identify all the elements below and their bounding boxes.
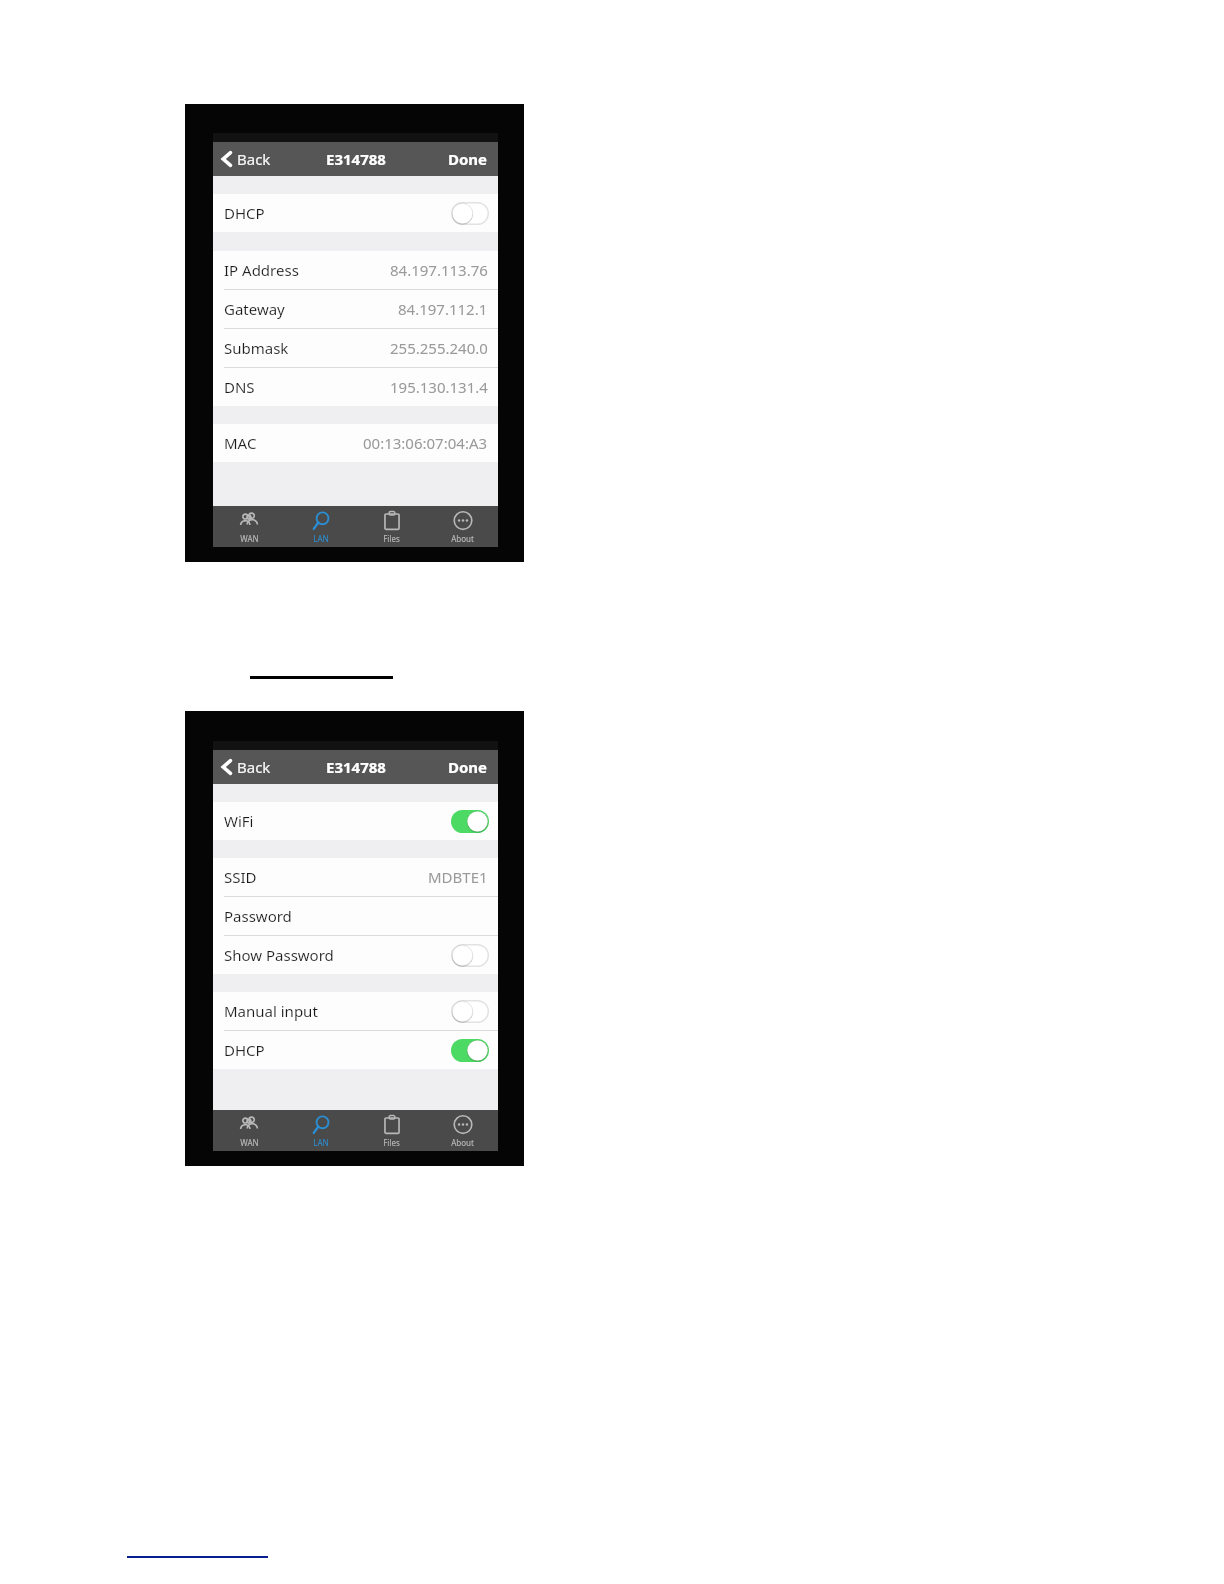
staticText: Gateway: [224, 299, 285, 319]
button[interactable]: IP Address: [213, 251, 498, 290]
staticText: 84.197.112.1: [398, 299, 488, 319]
button[interactable]: Files: [356, 506, 427, 547]
staticText: 00:13:06:07:04:A3: [363, 433, 488, 453]
button[interactable]: DHCP: [213, 1031, 498, 1069]
button[interactable]: Manual input: [213, 992, 498, 1031]
button[interactable]: LAN: [285, 1110, 356, 1151]
button[interactable]: WAN: [213, 506, 285, 547]
button[interactable]: Toggle off: [451, 1000, 489, 1023]
staticText: WAN: [240, 533, 259, 544]
staticText: Password: [224, 906, 292, 926]
button[interactable]: LAN: [285, 506, 356, 547]
button[interactable]: Toggle on: [451, 1039, 489, 1062]
staticText: Files: [383, 1137, 400, 1148]
button[interactable]: Done: [444, 145, 492, 173]
staticText: Files: [383, 533, 400, 544]
button[interactable]: Back: [220, 145, 273, 173]
staticText: Back: [237, 149, 271, 169]
staticText: Done: [448, 149, 488, 169]
staticText: LAN: [313, 533, 329, 544]
staticText: 84.197.113.76: [390, 260, 488, 280]
staticText: MDBTE1: [428, 867, 488, 887]
staticText: LAN: [313, 1137, 329, 1148]
button[interactable]: Gateway: [213, 290, 498, 329]
button[interactable]: Submask: [213, 329, 498, 368]
button[interactable]: DNS: [213, 368, 498, 406]
staticText: E314788: [326, 757, 386, 777]
staticText: DNS: [224, 377, 255, 397]
button[interactable]: WiFi: [213, 802, 498, 840]
staticText: Done: [448, 757, 488, 777]
button[interactable]: About: [427, 506, 498, 547]
staticText: Manual input: [224, 1001, 318, 1021]
button[interactable]: Files: [356, 1110, 427, 1151]
button[interactable]: About: [427, 1110, 498, 1151]
staticText: WiFi: [224, 811, 254, 831]
staticText: DHCP: [224, 1040, 265, 1060]
staticText: About: [451, 533, 474, 544]
staticText: WAN: [240, 1137, 259, 1148]
button[interactable]: WAN: [213, 1110, 285, 1151]
staticText: Show Password: [224, 945, 334, 965]
button[interactable]: SSID: [213, 858, 498, 897]
button[interactable]: Show Password: [213, 936, 498, 974]
staticText: About: [451, 1137, 474, 1148]
button[interactable]: Toggle on: [451, 810, 489, 833]
button[interactable]: Back: [220, 753, 273, 781]
staticText: Submask: [224, 338, 289, 358]
staticText: E314788: [326, 149, 386, 169]
button[interactable]: Password: [213, 897, 498, 936]
staticText: IP Address: [224, 260, 299, 280]
staticText: MAC: [224, 433, 257, 453]
button[interactable]: MAC: [213, 424, 498, 462]
button[interactable]: Done: [444, 753, 492, 781]
staticText: 195.130.131.4: [390, 377, 488, 397]
button[interactable]: DHCP: [213, 194, 498, 232]
staticText: Back: [237, 757, 271, 777]
button[interactable]: Toggle off: [451, 202, 489, 225]
button[interactable]: Toggle off: [451, 944, 489, 967]
staticText: DHCP: [224, 203, 265, 223]
staticText: 255.255.240.0: [390, 338, 488, 358]
staticText: SSID: [224, 867, 257, 887]
